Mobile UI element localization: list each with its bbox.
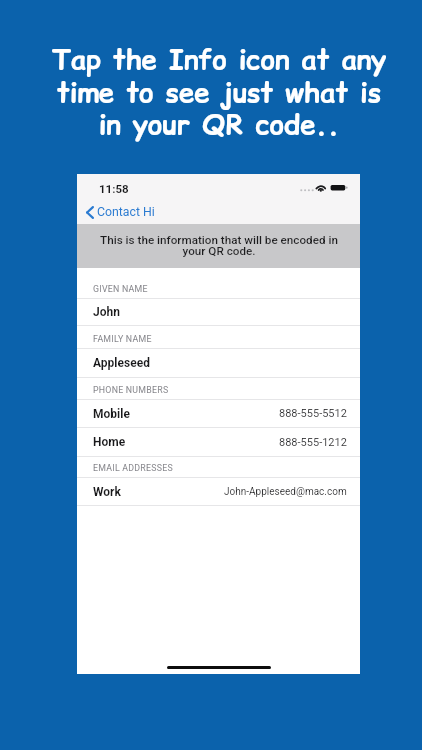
button[interactable]: Back to Contact Hi (77, 200, 360, 224)
button[interactable]: Work (77, 478, 360, 506)
button[interactable]: Mobile (77, 400, 360, 428)
staticText: 888-555-5512 (279, 407, 347, 420)
staticText: GIVEN NAME (93, 284, 148, 294)
staticText: 11:58 (99, 182, 129, 195)
button[interactable]: Home (77, 428, 360, 457)
staticText: Appleseed (93, 356, 150, 370)
staticText: Mobile (93, 407, 130, 421)
staticText: Work (93, 485, 121, 499)
staticText: This is the information that will be enc… (100, 233, 338, 258)
staticText: PHONE NUMBERS (93, 385, 169, 395)
staticText: John-Appleseed@mac.com (224, 486, 347, 498)
button[interactable]: Appleseed (77, 349, 360, 378)
staticText: Home (93, 435, 126, 449)
staticText: Tap the Info icon at any time to see jus… (8, 40, 422, 143)
staticText: John (93, 305, 120, 319)
staticText: EMAIL ADDRESSES (93, 463, 173, 473)
staticText: 888-555-1212 (279, 436, 347, 449)
staticText: FAMILY NAME (93, 334, 152, 344)
button[interactable]: John (77, 299, 360, 326)
staticText: Contact Hi (97, 205, 155, 219)
